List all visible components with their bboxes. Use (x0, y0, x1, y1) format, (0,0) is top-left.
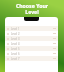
staticText: Level 6 (11, 52, 20, 56)
button[interactable]: Level 3 (7, 36, 56, 41)
button[interactable]: Level 1 (7, 26, 56, 31)
staticText: Level 4 (11, 42, 20, 46)
staticText: Level 1 (11, 27, 20, 31)
button[interactable]: Level 4 (7, 41, 56, 46)
staticText: Choose Your Level (0, 2, 64, 15)
staticText: Level 5 (11, 47, 20, 51)
button[interactable]: Level 2 (7, 31, 56, 36)
button[interactable]: Level 5 (7, 46, 56, 51)
staticText: Level 7 (11, 57, 20, 61)
staticText: Level 3 (11, 37, 20, 41)
button[interactable]: Level 6 (7, 51, 56, 56)
button[interactable]: Level 7 (7, 56, 56, 61)
staticText: Level 2 (11, 32, 20, 36)
